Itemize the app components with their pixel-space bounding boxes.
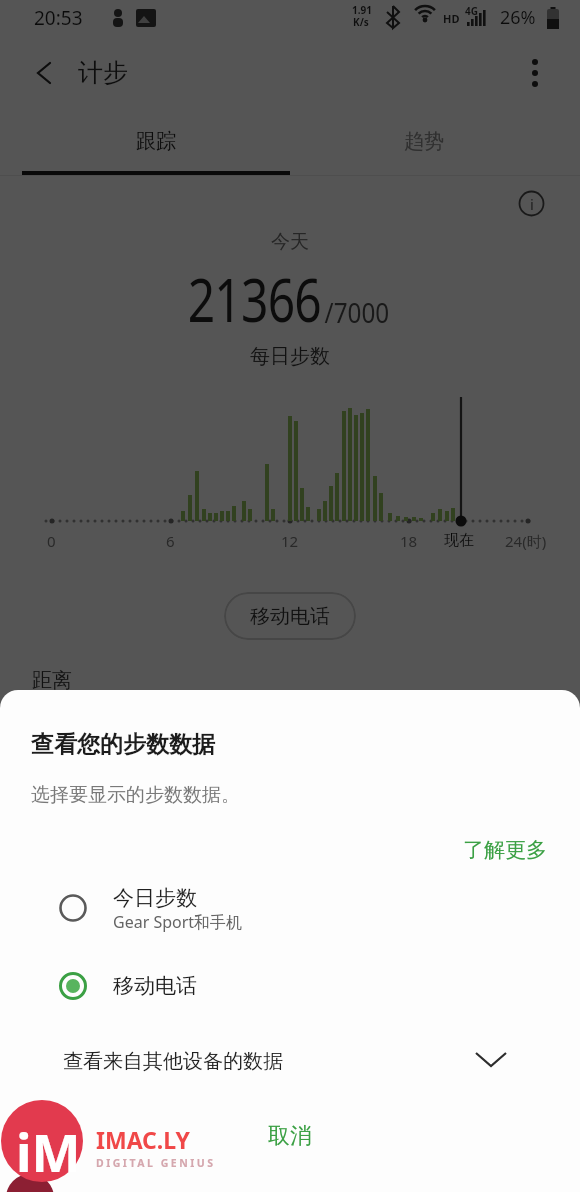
staticText: 21366 xyxy=(188,258,321,340)
staticText: Gear Sport和手机 xyxy=(113,911,243,933)
staticText: iM xyxy=(16,1116,81,1187)
staticText: 移动电话 xyxy=(113,973,197,999)
staticText: 26% xyxy=(500,5,536,30)
button[interactable]: 移动电话 xyxy=(224,592,356,640)
staticText: 跟踪 xyxy=(136,129,176,154)
staticText: 20:53 xyxy=(34,5,83,31)
staticText: 1.91 xyxy=(352,3,372,17)
staticText: 查看来自其他设备的数据 xyxy=(63,1049,283,1074)
button[interactable]: 趋势 xyxy=(290,115,558,175)
button[interactable]: 跟踪 xyxy=(22,115,290,175)
staticText: 今日步数 xyxy=(113,885,197,911)
staticText: 查看您的步数数据 xyxy=(31,730,215,759)
staticText: 现在 xyxy=(444,531,474,550)
button[interactable]: 查看来自其他设备的数据 xyxy=(0,1038,580,1084)
button[interactable] xyxy=(520,54,550,94)
staticText: 6 xyxy=(166,531,175,551)
staticText: 0 xyxy=(47,531,56,551)
staticText: DIGITAL GENIUS xyxy=(96,1156,216,1170)
staticText: 24(时) xyxy=(505,531,547,551)
staticText: 趋势 xyxy=(404,129,444,154)
staticText: 取消 xyxy=(268,1122,312,1150)
staticText: 每日步数 xyxy=(0,344,580,369)
staticText: 18 xyxy=(400,531,418,551)
staticText: 选择要显示的步数数据。 xyxy=(31,783,240,807)
staticText: HD xyxy=(443,11,460,26)
staticText: K/s xyxy=(353,15,369,29)
staticText: i xyxy=(530,194,534,214)
staticText: /7000 xyxy=(325,294,389,331)
staticText: 4G xyxy=(465,4,478,18)
button[interactable] xyxy=(30,52,62,92)
staticText: 移动电话 xyxy=(250,604,330,629)
staticText: 12 xyxy=(281,531,299,551)
button[interactable]: 今日步数 xyxy=(58,885,580,933)
button[interactable]: 了解更多 xyxy=(463,837,547,863)
staticText: 今天 xyxy=(0,230,580,254)
staticText: 距离 xyxy=(32,668,72,693)
staticText: IMAC.LY xyxy=(96,1124,190,1155)
button[interactable]: 移动电话 xyxy=(58,971,580,1001)
button[interactable]: i xyxy=(518,190,545,217)
staticText: 计步 xyxy=(78,57,128,88)
button[interactable]: 取消 xyxy=(220,1108,360,1164)
